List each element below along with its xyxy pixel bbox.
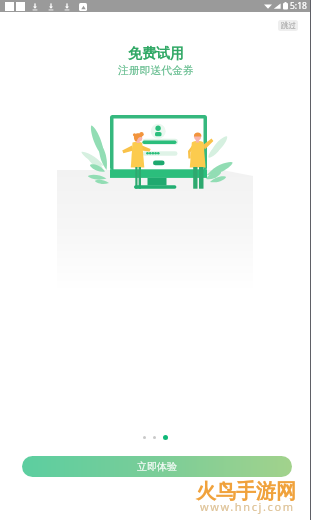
button[interactable]: 立即体验 [22,456,292,477]
staticText: 跳过 [281,21,296,30]
staticText: 免费试用 [128,45,184,63]
button[interactable]: 跳过 [278,20,298,31]
staticText: www.hncj.com [200,499,295,514]
staticText: 立即体验 [137,460,177,473]
staticText: 火鸟手游网 [196,479,296,504]
staticText: 5:18 [290,0,307,12]
staticText: 注册即送代金券 [118,64,194,78]
